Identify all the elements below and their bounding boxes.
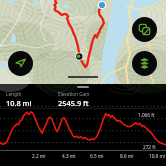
staticText: 2545.9 ft — [58, 98, 89, 108]
staticText: 10.8 mi — [149, 153, 166, 159]
button[interactable]: Elevation Gain — [58, 91, 90, 108]
staticText: 1,066 ft — [138, 112, 155, 118]
staticText: 2.2 mi — [32, 153, 46, 159]
staticText: Elevation Gain — [58, 91, 90, 97]
staticText: 272 ft — [143, 144, 156, 150]
staticText: 10.8 mi — [6, 98, 32, 108]
button[interactable]: My location — [8, 51, 33, 76]
staticText: 4.3 mi — [62, 153, 76, 159]
staticText: 6.5 mi — [90, 153, 104, 159]
button[interactable]: Map layers — [132, 51, 157, 76]
button[interactable]: Length — [6, 91, 32, 108]
staticText: 8.6 mi — [120, 153, 134, 159]
button[interactable]: Save route — [132, 17, 157, 42]
staticText: Length — [6, 91, 22, 97]
